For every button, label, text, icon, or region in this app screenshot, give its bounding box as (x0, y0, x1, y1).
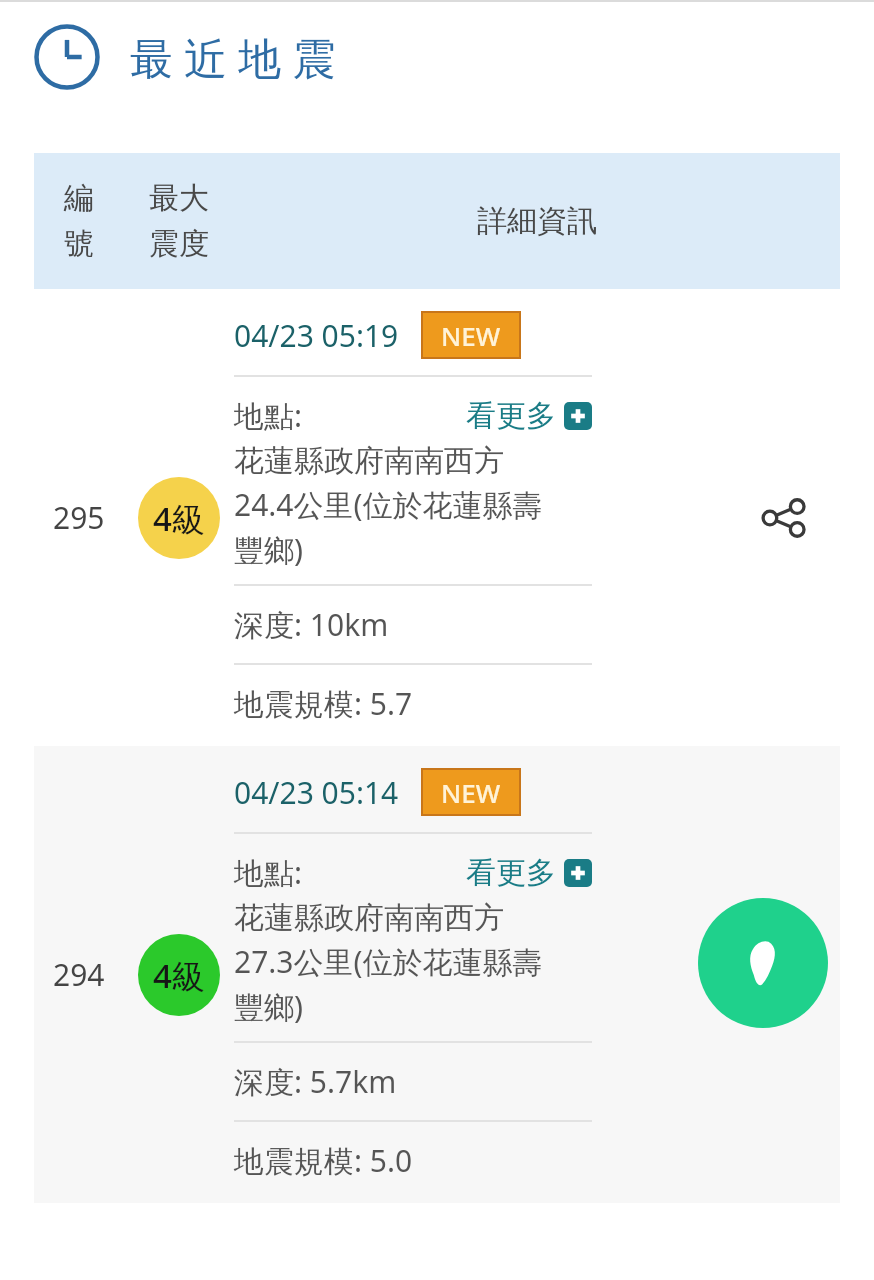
button[interactable]: NEW (421, 311, 521, 359)
staticText: 地點: (234, 852, 303, 893)
button[interactable]: 295 (34, 289, 840, 746)
button[interactable]: Share (754, 945, 814, 1005)
button[interactable]: Share (754, 488, 814, 548)
staticText: 04/23 05:14 (234, 772, 399, 813)
staticText: 27.3公里(位於花蓮縣壽 (234, 941, 543, 982)
button[interactable]: NEW (421, 768, 521, 816)
staticText: 294 (53, 954, 105, 995)
staticText: 最大 (149, 179, 209, 217)
staticText: 詳細資訊 (477, 202, 597, 240)
staticText: 豐鄉) (234, 529, 303, 570)
staticText: 4級 (153, 496, 205, 541)
staticText: 花蓮縣政府南南西方 (234, 899, 504, 937)
staticText: NEW (441, 318, 501, 353)
staticText: 地震規模: 5.7 (234, 683, 413, 724)
staticText: NEW (441, 775, 501, 810)
button[interactable]: Recent (34, 24, 874, 90)
button[interactable]: 294 (34, 746, 840, 1203)
staticText: 4級 (153, 953, 205, 998)
button[interactable]: Taiwan map (698, 898, 828, 1028)
other: Recent (34, 24, 100, 90)
button[interactable]: 看更多 (466, 397, 592, 435)
staticText: 震度 (149, 225, 209, 263)
staticText: 地點: (234, 395, 303, 436)
staticText: 號 (64, 225, 94, 263)
button[interactable]: 看更多 (466, 854, 592, 892)
staticText: 豐鄉) (234, 986, 303, 1027)
staticText: 深度: 5.7km (234, 1061, 397, 1102)
staticText: 深度: 10km (234, 604, 389, 645)
staticText: 24.4公里(位於花蓮縣壽 (234, 484, 543, 525)
staticText: 編 (64, 179, 94, 217)
staticText: 最 近 地 震 (130, 28, 336, 87)
staticText: 花蓮縣政府南南西方 (234, 442, 504, 480)
staticText: 地震規模: 5.0 (234, 1140, 413, 1181)
staticText: 04/23 05:19 (234, 315, 399, 356)
staticText: 295 (53, 497, 105, 538)
staticText: 看更多 (466, 854, 556, 892)
staticText: 看更多 (466, 397, 556, 435)
